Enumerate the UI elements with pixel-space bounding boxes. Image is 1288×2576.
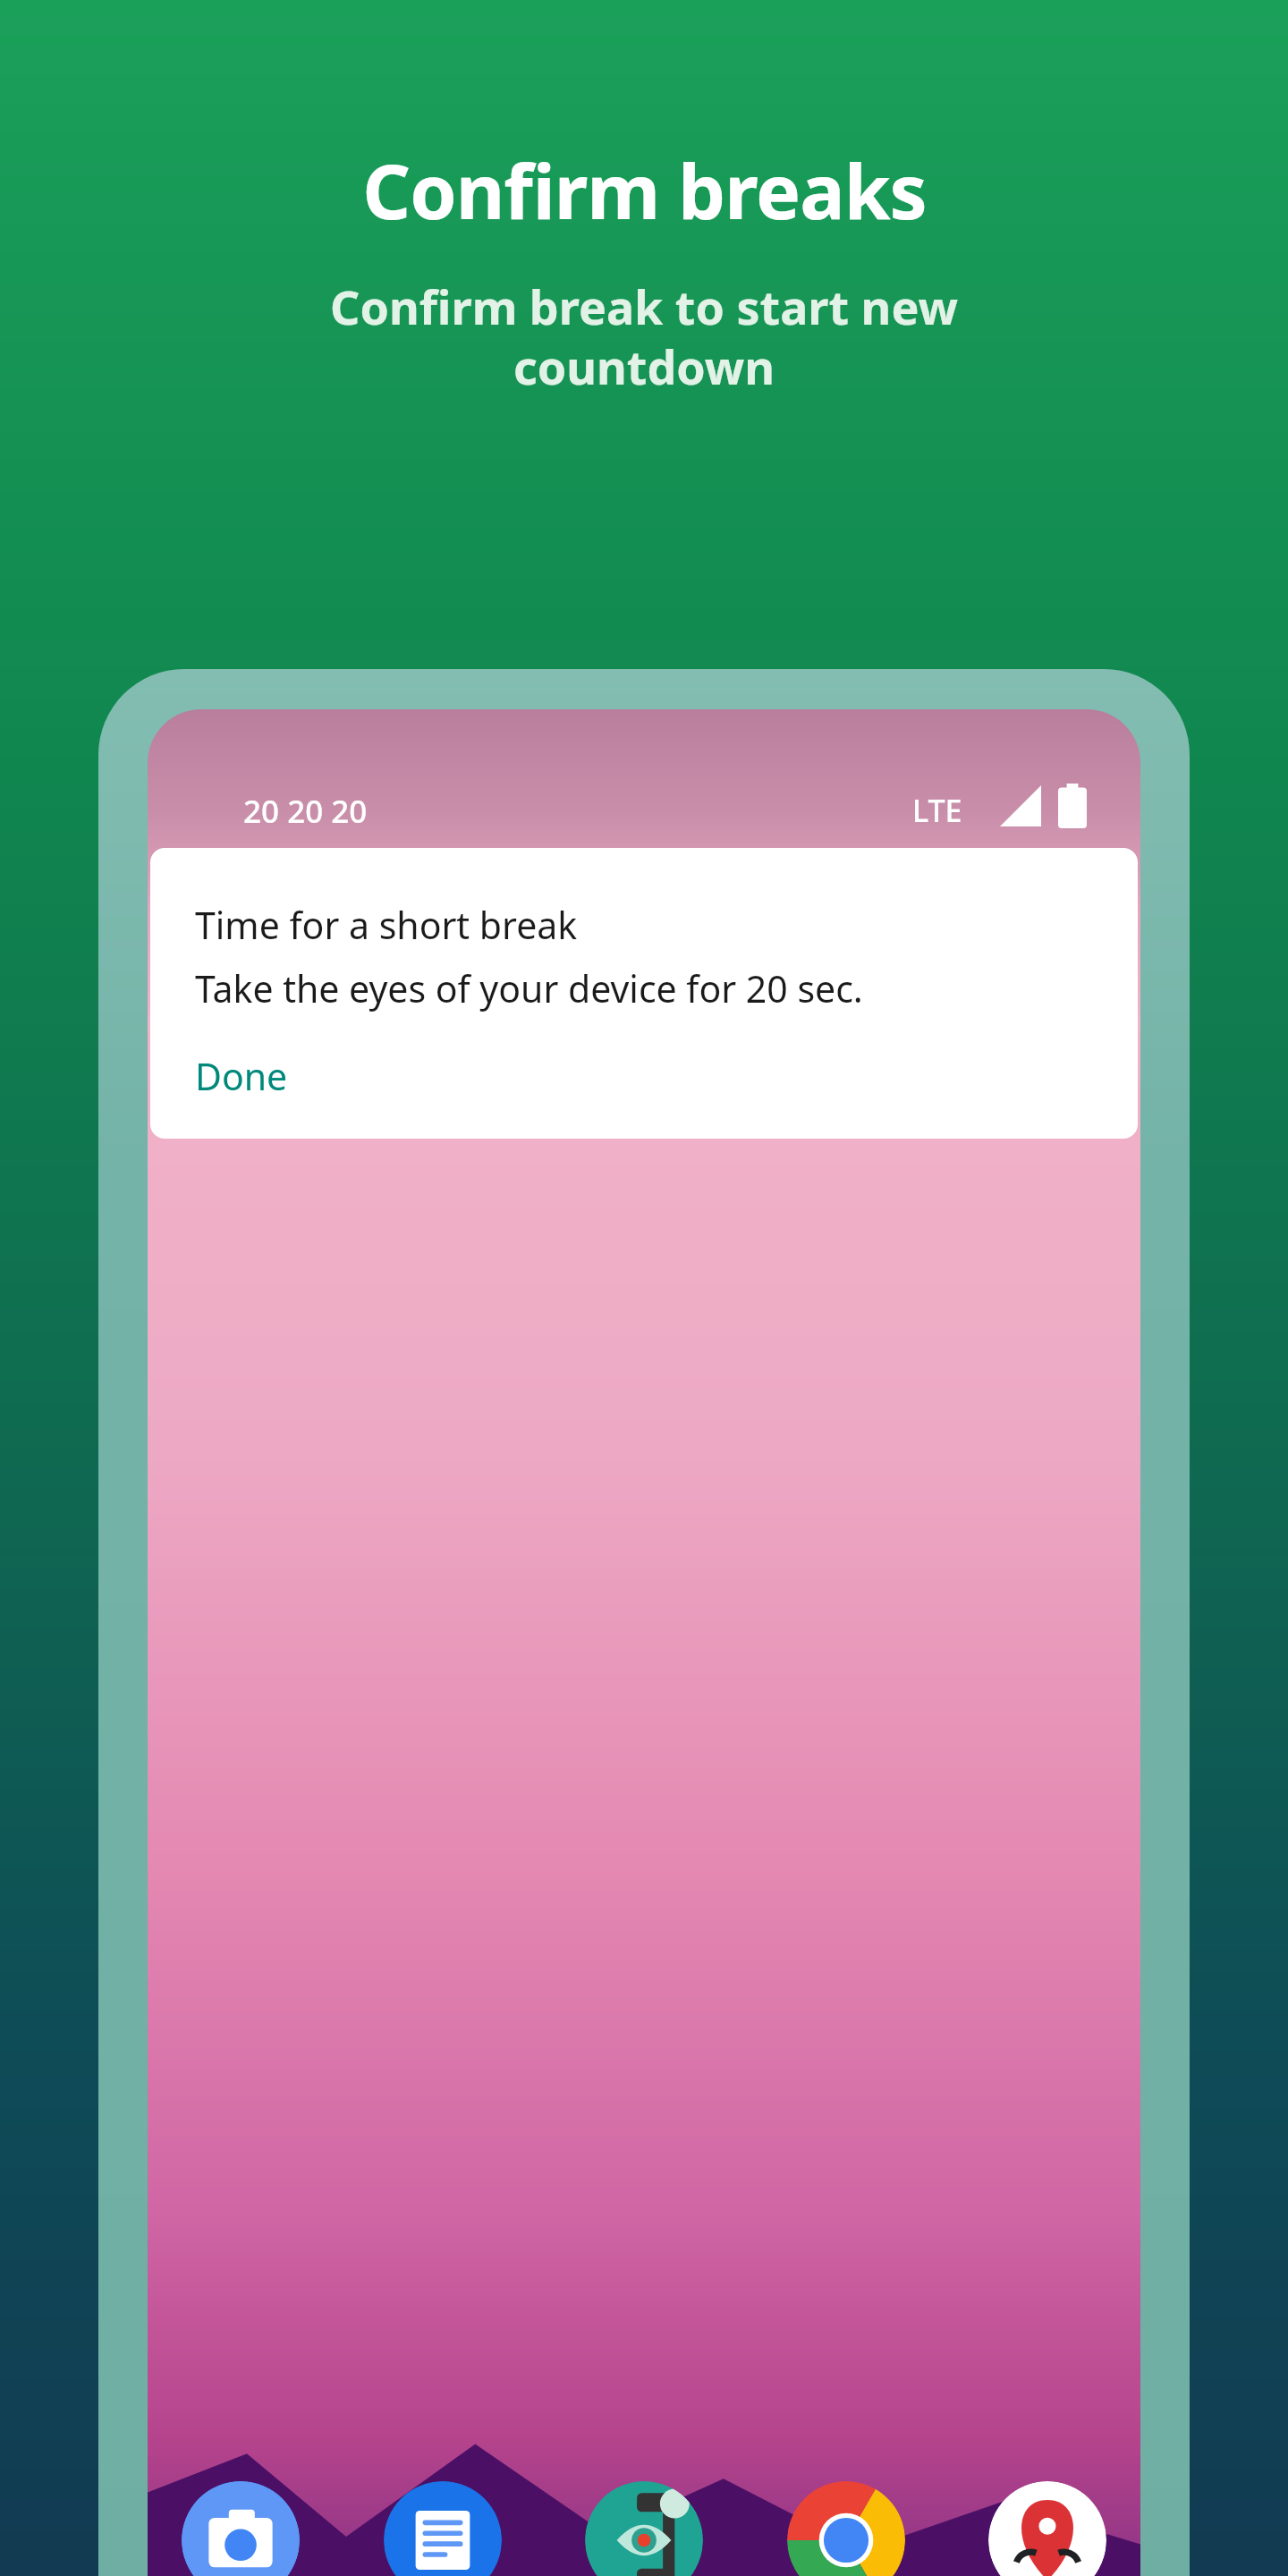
button[interactable]: Chrome (787, 2481, 905, 2576)
button[interactable]: Messages (384, 2481, 502, 2576)
button[interactable]: Eye break app (585, 2481, 703, 2576)
staticText: Confirm break to start new countdown (0, 275, 1288, 399)
button[interactable]: Camera (182, 2481, 300, 2576)
button[interactable]: Maps (988, 2481, 1106, 2576)
button[interactable]: Time for a short break (150, 848, 1138, 1139)
button[interactable]: Done (195, 1051, 288, 1101)
staticText: Take the eyes of your device for 20 sec. (195, 963, 863, 1013)
staticText: Done (195, 1051, 288, 1101)
staticText: 20 20 20 (243, 790, 368, 833)
staticText: Confirm breaks (362, 139, 927, 241)
staticText: LTE (912, 790, 962, 831)
staticText: Time for a short break (195, 900, 578, 950)
